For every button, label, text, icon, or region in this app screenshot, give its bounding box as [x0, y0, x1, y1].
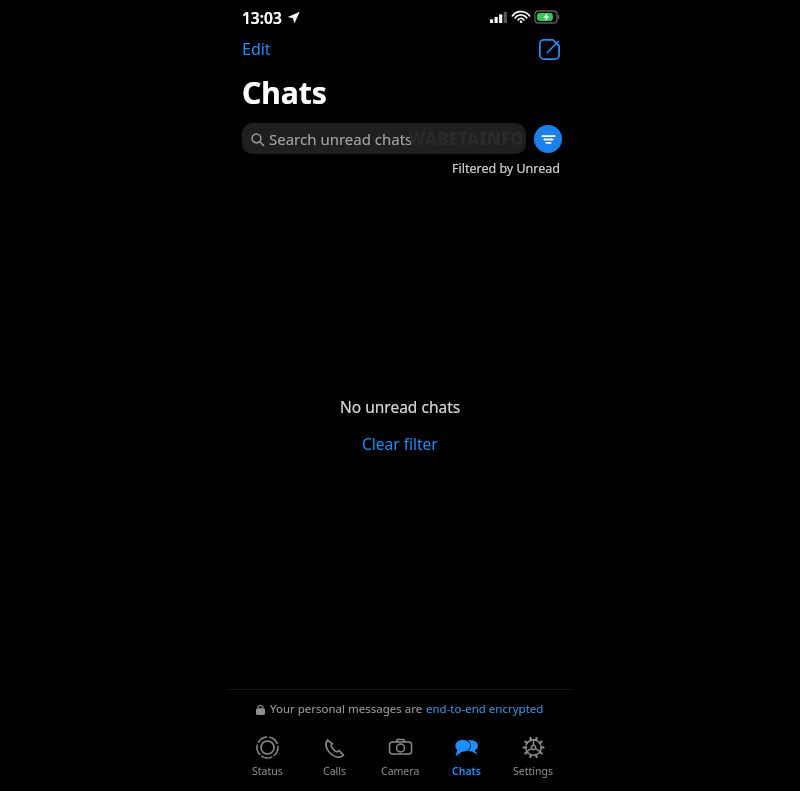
staticText: 13:03 [242, 7, 282, 28]
staticText: Your personal messages are [270, 701, 426, 717]
button[interactable]: Status [236, 727, 298, 778]
staticText: Chats [242, 72, 327, 113]
button[interactable]: Edit [228, 34, 279, 64]
staticText: Search unread chats [269, 129, 413, 149]
staticText: No unread chats [340, 396, 461, 417]
button[interactable]: Camera [369, 727, 431, 778]
button[interactable]: Clear filter [354, 431, 446, 456]
button[interactable]: New chat [531, 37, 572, 62]
staticText: Calls [323, 764, 346, 778]
button[interactable]: end-to-end encrypted [426, 701, 544, 717]
button[interactable]: Filter chats [534, 125, 562, 153]
button[interactable]: Search unread chats [242, 123, 526, 154]
staticText: Settings [513, 764, 553, 778]
staticText: Edit [242, 38, 271, 60]
staticText: WABETAINFO [408, 127, 524, 150]
button[interactable]: Settings [502, 727, 564, 778]
staticText: end-to-end encrypted [426, 701, 544, 717]
button[interactable]: Chats [435, 727, 497, 778]
button[interactable]: Calls [303, 727, 365, 778]
staticText: Chats [452, 764, 481, 778]
staticText: Filtered by Unread [452, 160, 560, 177]
staticText: Clear filter [362, 433, 438, 454]
staticText: Status [252, 764, 283, 778]
staticText: Camera [381, 764, 420, 778]
